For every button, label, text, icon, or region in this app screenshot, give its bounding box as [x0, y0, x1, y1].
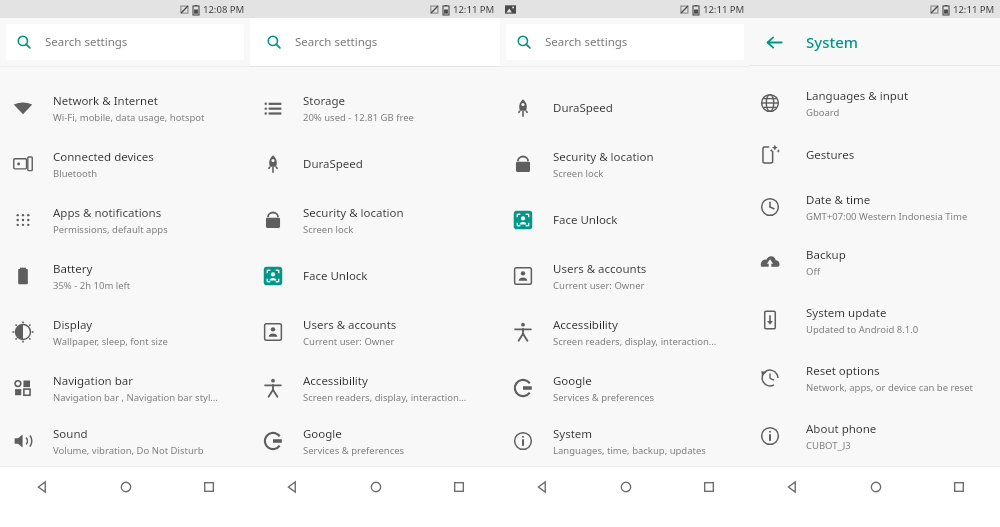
staticText: System — [806, 32, 859, 52]
button[interactable]: Home — [84, 467, 167, 527]
button[interactable]: Languages & input — [750, 77, 1000, 129]
button[interactable]: Face Unlock — [250, 248, 500, 304]
staticText: Search settings — [545, 34, 628, 50]
button[interactable]: Date & time — [750, 181, 1000, 233]
button[interactable]: About phone — [750, 407, 1000, 465]
button[interactable]: Home — [334, 467, 417, 527]
staticText: Security & location — [553, 149, 654, 165]
staticText: Screen readers, display, interaction… — [303, 391, 467, 404]
staticText: Search settings — [295, 34, 378, 50]
staticText: System — [553, 426, 593, 442]
button[interactable]: Network & Internet — [0, 80, 250, 136]
staticText: Search settings — [45, 34, 128, 50]
staticText: Services & preferences — [553, 391, 655, 404]
staticText: Screen lock — [303, 223, 354, 236]
staticText: Security & location — [303, 205, 404, 221]
staticText: Storage — [303, 93, 345, 109]
button[interactable]: DuraSpeed — [500, 80, 750, 136]
button[interactable]: DuraSpeed — [250, 136, 500, 192]
button[interactable]: Gestures — [750, 129, 1000, 181]
staticText: Google — [303, 426, 342, 442]
staticText: Current user: Owner — [553, 279, 645, 292]
staticText: CUBOT_J3 — [806, 439, 851, 452]
button[interactable]: Security & location — [500, 136, 750, 192]
staticText: Screen lock — [553, 167, 604, 180]
button[interactable]: Sound — [0, 416, 250, 466]
staticText: Navigation bar , Navigation bar styl… — [53, 391, 218, 404]
other: Search — [17, 35, 31, 49]
staticText: Permissions, default apps — [53, 223, 168, 236]
button[interactable]: Home — [834, 467, 917, 527]
staticText: Apps & notifications — [53, 205, 162, 221]
button[interactable]: Display — [0, 304, 250, 360]
button[interactable]: Search — [6, 24, 244, 60]
button[interactable]: Home — [584, 467, 667, 527]
button[interactable]: Navigation bar — [0, 360, 250, 416]
staticText: Navigation bar — [53, 373, 133, 389]
button[interactable]: Back — [0, 467, 84, 527]
button[interactable]: Users & accounts — [500, 248, 750, 304]
button[interactable]: Google — [500, 360, 750, 416]
button[interactable]: Recents — [667, 467, 750, 527]
staticText: Screen readers, display, interaction… — [553, 335, 717, 348]
button[interactable]: System — [500, 416, 750, 466]
button[interactable]: Apps & notifications — [0, 192, 250, 248]
button[interactable]: Search — [506, 24, 744, 60]
button[interactable]: Back — [500, 467, 584, 527]
staticText: Gestures — [806, 147, 855, 163]
button[interactable]: Back — [750, 467, 834, 527]
button[interactable]: Face Unlock — [500, 192, 750, 248]
button[interactable]: Recents — [917, 467, 1000, 527]
staticText: 20% used - 12.81 GB free — [303, 111, 414, 124]
staticText: Accessibility — [553, 317, 618, 333]
staticText: DuraSpeed — [553, 100, 613, 116]
staticText: Bluetooth — [53, 167, 98, 180]
staticText: Google — [553, 373, 592, 389]
staticText: Face Unlock — [303, 268, 368, 284]
staticText: Display — [53, 317, 93, 333]
staticText: System update — [806, 305, 887, 321]
staticText: Reset options — [806, 363, 880, 379]
button[interactable]: Search — [256, 24, 494, 60]
staticText: Users & accounts — [553, 261, 647, 277]
staticText: Users & accounts — [303, 317, 397, 333]
button[interactable]: Accessibility — [500, 304, 750, 360]
staticText: Languages & input — [806, 88, 909, 104]
button[interactable]: Connected devices — [0, 136, 250, 192]
button[interactable]: Battery — [0, 248, 250, 304]
button[interactable]: Security & location — [250, 192, 500, 248]
staticText: Wallpaper, sleep, font size — [53, 335, 168, 348]
button[interactable]: Recents — [167, 467, 250, 527]
staticText: Battery — [53, 261, 93, 277]
button[interactable]: Back — [758, 26, 790, 58]
staticText: Volume, vibration, Do Not Disturb — [53, 444, 204, 457]
staticText: About phone — [806, 421, 877, 437]
staticText: Connected devices — [53, 149, 154, 165]
button[interactable]: Users & accounts — [250, 304, 500, 360]
staticText: 12:08 PM — [203, 3, 245, 16]
button[interactable]: Google — [250, 416, 500, 466]
button[interactable]: Backup — [750, 233, 1000, 291]
staticText: Accessibility — [303, 373, 368, 389]
staticText: DuraSpeed — [303, 156, 363, 172]
staticText: Languages, time, backup, updates — [553, 444, 706, 457]
staticText: Wi-Fi, mobile, data usage, hotspot — [53, 111, 205, 124]
other: Search — [517, 35, 531, 49]
staticText: Network & Internet — [53, 93, 158, 109]
staticText: Gboard — [806, 106, 840, 119]
button[interactable]: Reset options — [750, 349, 1000, 407]
button[interactable]: Accessibility — [250, 360, 500, 416]
staticText: Off — [806, 265, 820, 278]
staticText: Date & time — [806, 192, 871, 208]
staticText: Sound — [53, 426, 88, 442]
button[interactable]: System update — [750, 291, 1000, 349]
button[interactable]: Storage — [250, 80, 500, 136]
other: Search — [267, 35, 281, 49]
button[interactable]: Back — [250, 467, 334, 527]
staticText: Network, apps, or device can be reset — [806, 381, 973, 394]
staticText: Current user: Owner — [303, 335, 395, 348]
staticText: GMT+07:00 Western Indonesia Time — [806, 210, 968, 223]
staticText: Services & preferences — [303, 444, 405, 457]
button[interactable]: Recents — [417, 467, 500, 527]
staticText: 35% - 2h 10m left — [53, 279, 131, 292]
